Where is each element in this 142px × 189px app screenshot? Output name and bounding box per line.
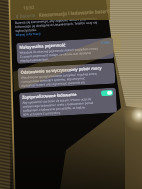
staticText: Konserwacja i ładowanie baterii bbox=[38, 8, 111, 18]
staticText: Bateria się konserwuje, aby zapobiec utr… bbox=[15, 16, 98, 33]
staticText: Wbudowane oprogramowanie zarządza i regu… bbox=[21, 72, 97, 88]
staticText: Maksymalna pojemność bbox=[19, 42, 66, 50]
staticText: 100% bbox=[100, 40, 110, 45]
staticText: Baterie bbox=[19, 12, 36, 19]
staticText: 16:52 bbox=[23, 4, 35, 11]
button[interactable]: Optimized charging toggle bbox=[101, 90, 113, 96]
staticText: Zoptymalizowane ładowanie bbox=[22, 92, 77, 100]
staticText: Wskaźnik do obecnej pojemności baterii w… bbox=[19, 46, 99, 63]
button[interactable]: Back to Baterie bbox=[14, 12, 36, 19]
button[interactable]: Maksymalna pojemność bbox=[16, 38, 114, 64]
staticText: Odstawienie na wyczyszczony pobór mocy bbox=[21, 65, 102, 75]
staticText: Aby spowolnić starzenie się baterii, iPh… bbox=[22, 97, 94, 117]
button[interactable]: Odstawienie na wyczyszczony pobór mocy bbox=[17, 63, 115, 89]
button[interactable]: Zoptymalizowane ładowanie bbox=[19, 87, 117, 118]
staticText: Więcej informacji bbox=[15, 32, 41, 37]
